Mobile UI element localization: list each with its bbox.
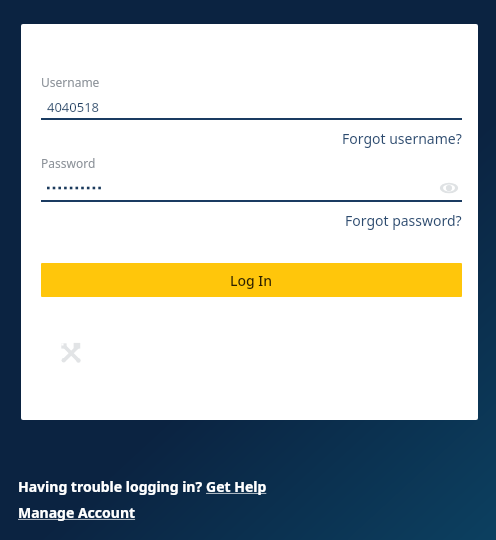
button[interactable]: Manage Account	[18, 503, 136, 522]
staticText: 4040518	[47, 98, 100, 116]
staticText: Password	[41, 155, 96, 171]
staticText: Having trouble logging in?	[18, 477, 206, 496]
staticText: Username	[41, 74, 100, 90]
staticText: Manage Account	[18, 503, 136, 522]
staticText: Forgot username?	[342, 129, 462, 148]
staticText: Log In	[230, 271, 273, 290]
staticText: Forgot password?	[345, 211, 462, 230]
button[interactable]: Tools	[57, 339, 85, 367]
button[interactable]: Show password	[41, 176, 462, 200]
button[interactable]: 4040518	[41, 96, 462, 118]
button[interactable]: Get Help	[206, 477, 267, 496]
button[interactable]: Log In	[41, 263, 462, 297]
button[interactable]: Show password	[436, 176, 462, 200]
button[interactable]: Forgot password?	[339, 202, 462, 234]
button[interactable]: Forgot username?	[336, 120, 462, 152]
staticText: Get Help	[206, 477, 267, 496]
